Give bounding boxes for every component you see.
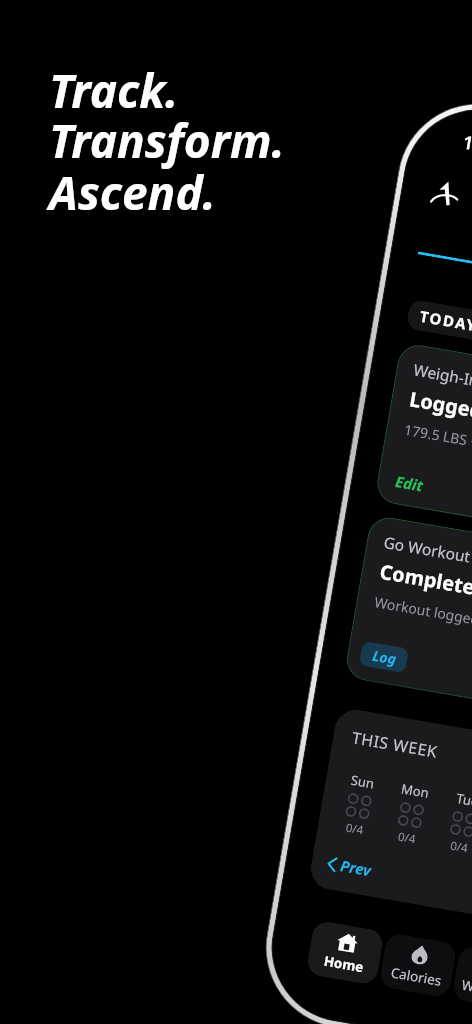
staticText: Ascend.	[49, 161, 216, 224]
staticText: Workout logged today	[373, 592, 472, 636]
button[interactable]: Prev	[317, 847, 381, 886]
staticText: Calories	[389, 963, 443, 990]
button[interactable]: Weigh-In	[374, 342, 472, 566]
staticText: TODAY	[418, 306, 472, 335]
button[interactable]: Calories	[378, 932, 458, 998]
button[interactable]: Log	[359, 641, 409, 673]
button[interactable]: Workout	[451, 945, 472, 1011]
other: Ascend logo	[430, 179, 460, 207]
staticText: Logged	[407, 385, 472, 424]
button[interactable]: TODAY	[406, 299, 472, 342]
staticText: 0/4	[449, 838, 469, 856]
staticText: 0/4	[345, 820, 365, 838]
staticText: Weigh-In	[412, 358, 472, 390]
staticText: 0/4	[397, 829, 417, 847]
staticText: Tue	[455, 789, 472, 810]
staticText: Track.	[49, 59, 179, 122]
staticText: Completed	[378, 558, 472, 603]
button[interactable]: Home	[305, 919, 385, 986]
staticText: Mon	[400, 779, 431, 802]
staticText: Go Workout	[382, 531, 472, 567]
staticText: Home	[322, 952, 365, 976]
staticText: THIS WEEK	[350, 726, 440, 763]
button[interactable]: Edit	[394, 471, 425, 495]
staticText: Sun	[350, 771, 376, 793]
staticText: Log	[371, 646, 398, 668]
staticText: 11:30	[461, 130, 472, 162]
staticText: Transform.	[49, 109, 285, 172]
button[interactable]: Go Workout	[343, 514, 472, 743]
staticText: 179.5 LBS • Today	[403, 420, 472, 458]
staticText: Prev	[339, 855, 373, 880]
staticText: Workout	[460, 976, 472, 1003]
